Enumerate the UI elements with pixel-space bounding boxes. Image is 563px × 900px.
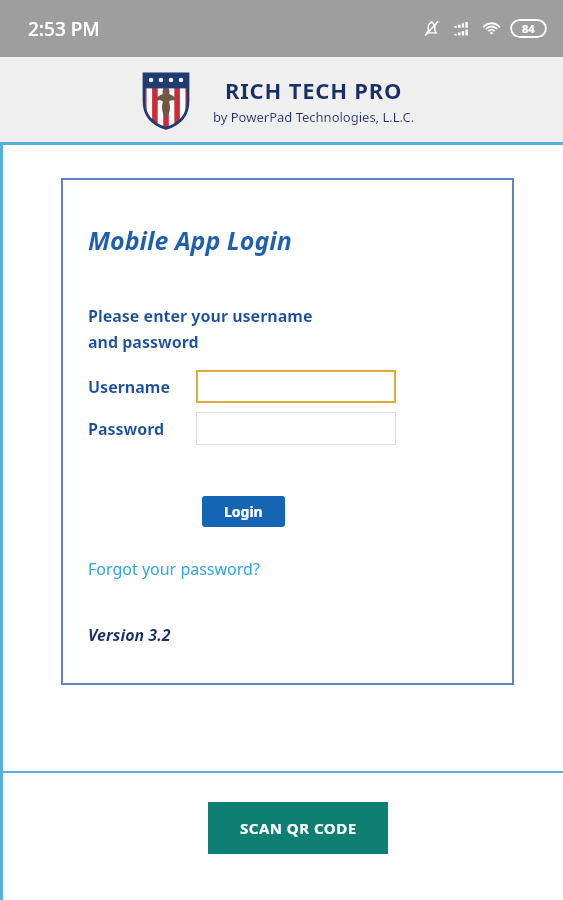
staticText: RICH TECH PRO: [225, 75, 403, 105]
button[interactable]: SCAN QR CODE: [208, 802, 388, 854]
other: Mobile signal: [451, 18, 472, 39]
staticText: Mobile App Login: [88, 223, 292, 257]
staticText: and password: [88, 331, 199, 353]
staticText: Version 3.2: [88, 624, 171, 646]
staticText: by PowerPad Technologies, L.L.C.: [213, 108, 415, 126]
staticText: 2:53 PM: [28, 16, 100, 42]
other: Wi-Fi: [481, 18, 502, 39]
staticText: Username: [88, 376, 170, 398]
button[interactable]: Username input field: [196, 370, 396, 403]
button[interactable]: Password input field: [196, 412, 396, 445]
staticText: Password: [88, 418, 165, 440]
staticText: Forgot your password?: [88, 558, 260, 580]
other: Silent mode: [421, 18, 442, 39]
other: Battery 84 percent: [510, 19, 547, 38]
staticText: SCAN QR CODE: [240, 818, 357, 838]
staticText: Please enter your username: [88, 305, 313, 327]
staticText: Login: [224, 502, 263, 521]
button[interactable]: Forgot your password?: [88, 558, 260, 580]
staticText: 84: [522, 21, 535, 36]
button[interactable]: Login: [202, 496, 285, 527]
